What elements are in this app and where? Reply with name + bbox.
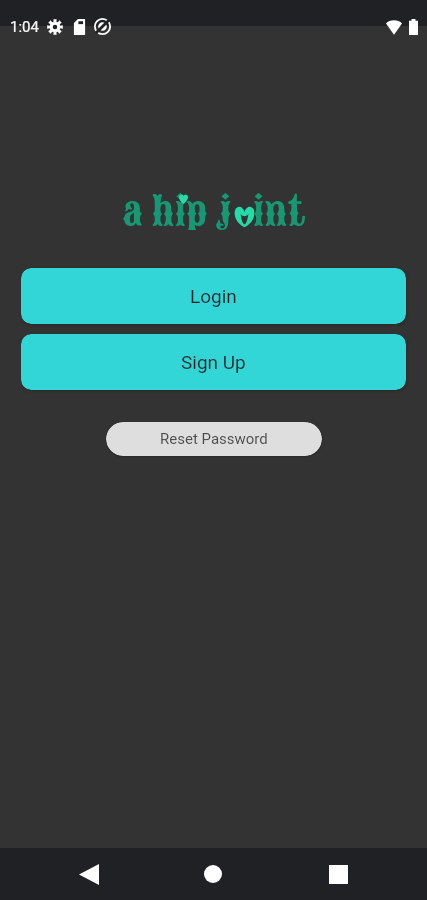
button[interactable]: Login [21, 268, 406, 324]
staticText: a hip j [122, 186, 232, 230]
staticText: int [253, 186, 306, 230]
button[interactable]: Recent apps [311, 848, 365, 900]
staticText: Sign Up [181, 351, 246, 373]
staticText: 1:04 [10, 18, 39, 36]
staticText: Reset Password [160, 430, 268, 448]
button[interactable]: Sign Up [21, 334, 406, 390]
staticText: Login [190, 285, 237, 307]
button[interactable]: Reset Password [106, 422, 322, 456]
button[interactable]: Back [62, 848, 116, 900]
button[interactable]: Home [186, 848, 240, 900]
